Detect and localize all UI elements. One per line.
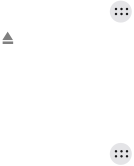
button[interactable]: Eject [3, 31, 13, 44]
button[interactable]: More [110, 1, 132, 23]
button[interactable]: More [110, 143, 132, 165]
